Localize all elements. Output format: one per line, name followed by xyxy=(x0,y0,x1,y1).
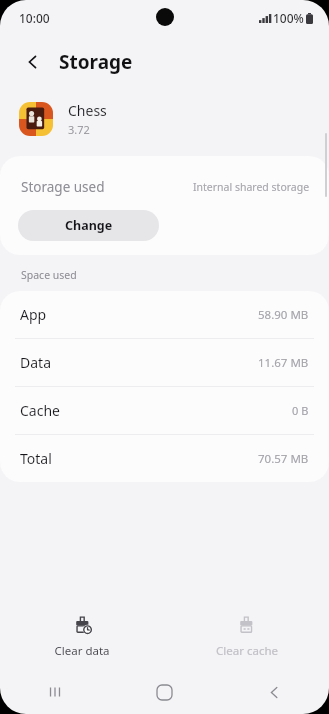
staticText: Storage used xyxy=(21,178,105,196)
button[interactable]: Total xyxy=(0,435,329,482)
button[interactable]: Home xyxy=(109,670,219,714)
staticText: 10:00 xyxy=(19,10,50,26)
staticText: 70.57 MB xyxy=(258,451,309,467)
button[interactable]: Clear data xyxy=(0,609,164,665)
button[interactable]: Back xyxy=(219,670,329,714)
staticText: Clear cache xyxy=(216,643,278,659)
staticText: Total xyxy=(20,449,52,468)
staticText: Clear data xyxy=(54,643,110,659)
button[interactable]: Change xyxy=(18,210,159,241)
button[interactable]: Back xyxy=(18,47,48,77)
staticText: 58.90 MB xyxy=(258,307,309,323)
staticText: Internal shared storage xyxy=(193,180,310,194)
button[interactable]: Clear cache xyxy=(164,609,329,665)
staticText: Cache xyxy=(20,401,60,420)
button[interactable]: App xyxy=(0,291,329,338)
staticText: Change xyxy=(65,217,113,234)
staticText: 0 B xyxy=(292,403,309,418)
button[interactable]: Recents xyxy=(0,670,109,714)
staticText: 3.72 xyxy=(68,122,90,137)
button[interactable]: Cache xyxy=(0,387,329,434)
staticText: App xyxy=(20,305,47,324)
staticText: Space used xyxy=(21,268,77,282)
button[interactable]: Data xyxy=(0,339,329,386)
staticText: 100% xyxy=(273,10,304,26)
staticText: Storage xyxy=(59,49,133,75)
staticText: Data xyxy=(20,353,51,372)
staticText: Chess xyxy=(68,101,107,120)
staticText: 11.67 MB xyxy=(258,355,309,371)
